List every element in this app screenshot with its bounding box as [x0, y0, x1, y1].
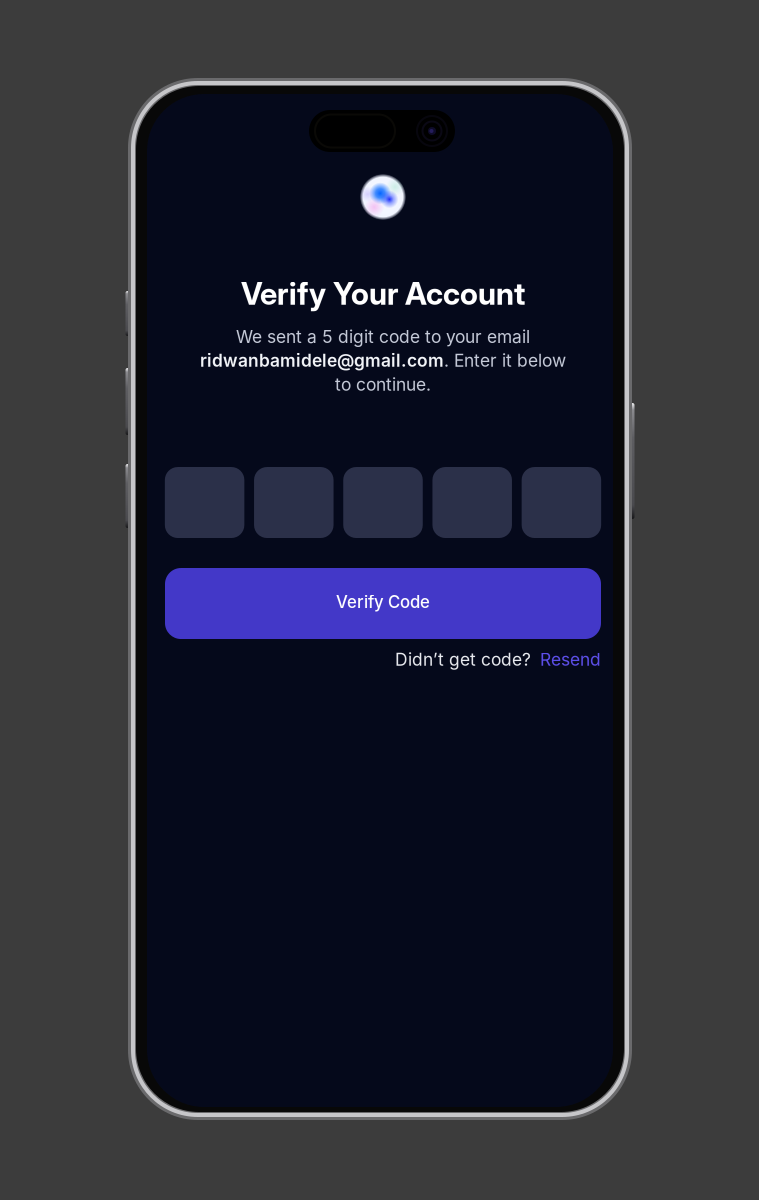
staticText: . Enter it below [444, 350, 566, 371]
staticText: ridwanbamidele@gmail.com [200, 350, 444, 371]
staticText: We sent a 5 digit code to your email [236, 326, 530, 347]
staticText: Resend [540, 649, 601, 670]
button[interactable]: Verify Code [165, 568, 601, 639]
staticText: Didn’t get code? [395, 649, 531, 670]
staticText: Verify Your Account [241, 275, 525, 312]
button[interactable]: Resend [531, 649, 601, 670]
staticText: to continue. [335, 374, 431, 395]
staticText: Verify Code [336, 592, 430, 612]
